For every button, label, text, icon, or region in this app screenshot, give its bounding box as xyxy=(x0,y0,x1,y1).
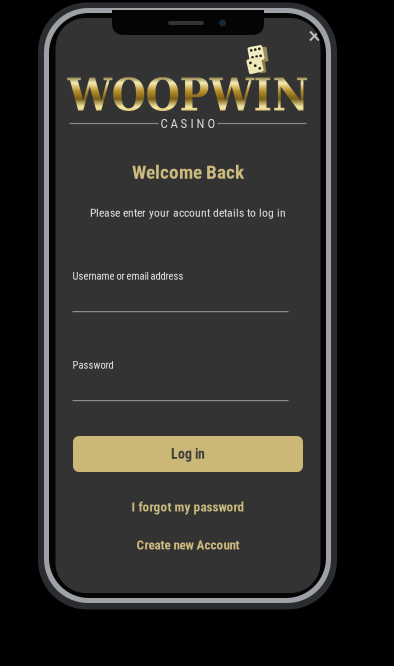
button[interactable]: Close xyxy=(301,23,327,49)
staticText: C A S I N O xyxy=(160,116,215,131)
staticText: Create new Account xyxy=(136,537,239,553)
button[interactable]: Log in xyxy=(73,436,303,472)
button[interactable]: I forgot my password xyxy=(55,496,320,518)
button[interactable]: Create new Account xyxy=(55,534,320,556)
staticText: Please enter your account details to log… xyxy=(90,206,286,220)
staticText: Log in xyxy=(171,446,205,462)
staticText: Username or email address xyxy=(72,270,183,282)
staticText: Welcome Back xyxy=(132,161,244,183)
staticText: Password xyxy=(72,359,113,371)
staticText: I forgot my password xyxy=(131,499,244,515)
